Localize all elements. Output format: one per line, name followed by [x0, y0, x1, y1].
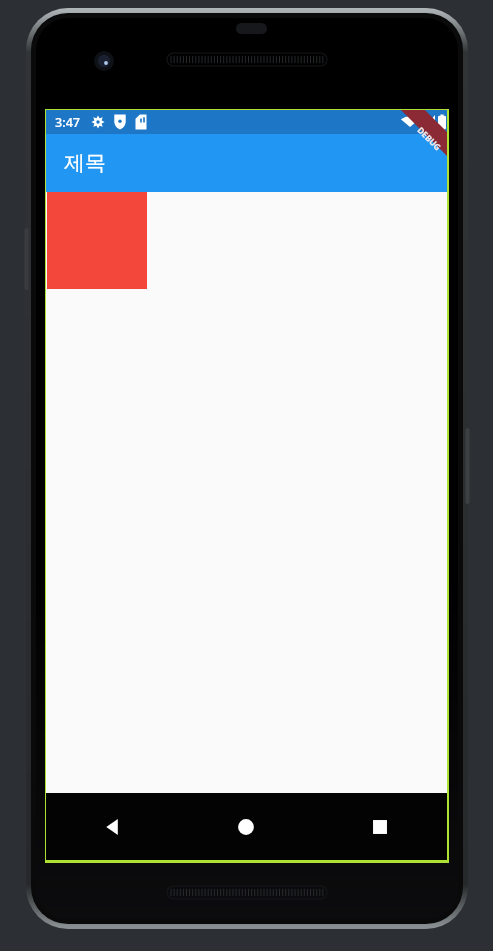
button[interactable]: Back: [46, 793, 179, 860]
staticText: 3:47: [55, 114, 81, 131]
staticText: DEBUG: [415, 124, 444, 153]
staticText: 제목: [64, 150, 106, 176]
button[interactable]: Home: [179, 793, 313, 860]
button[interactable]: Recent apps: [313, 793, 447, 860]
